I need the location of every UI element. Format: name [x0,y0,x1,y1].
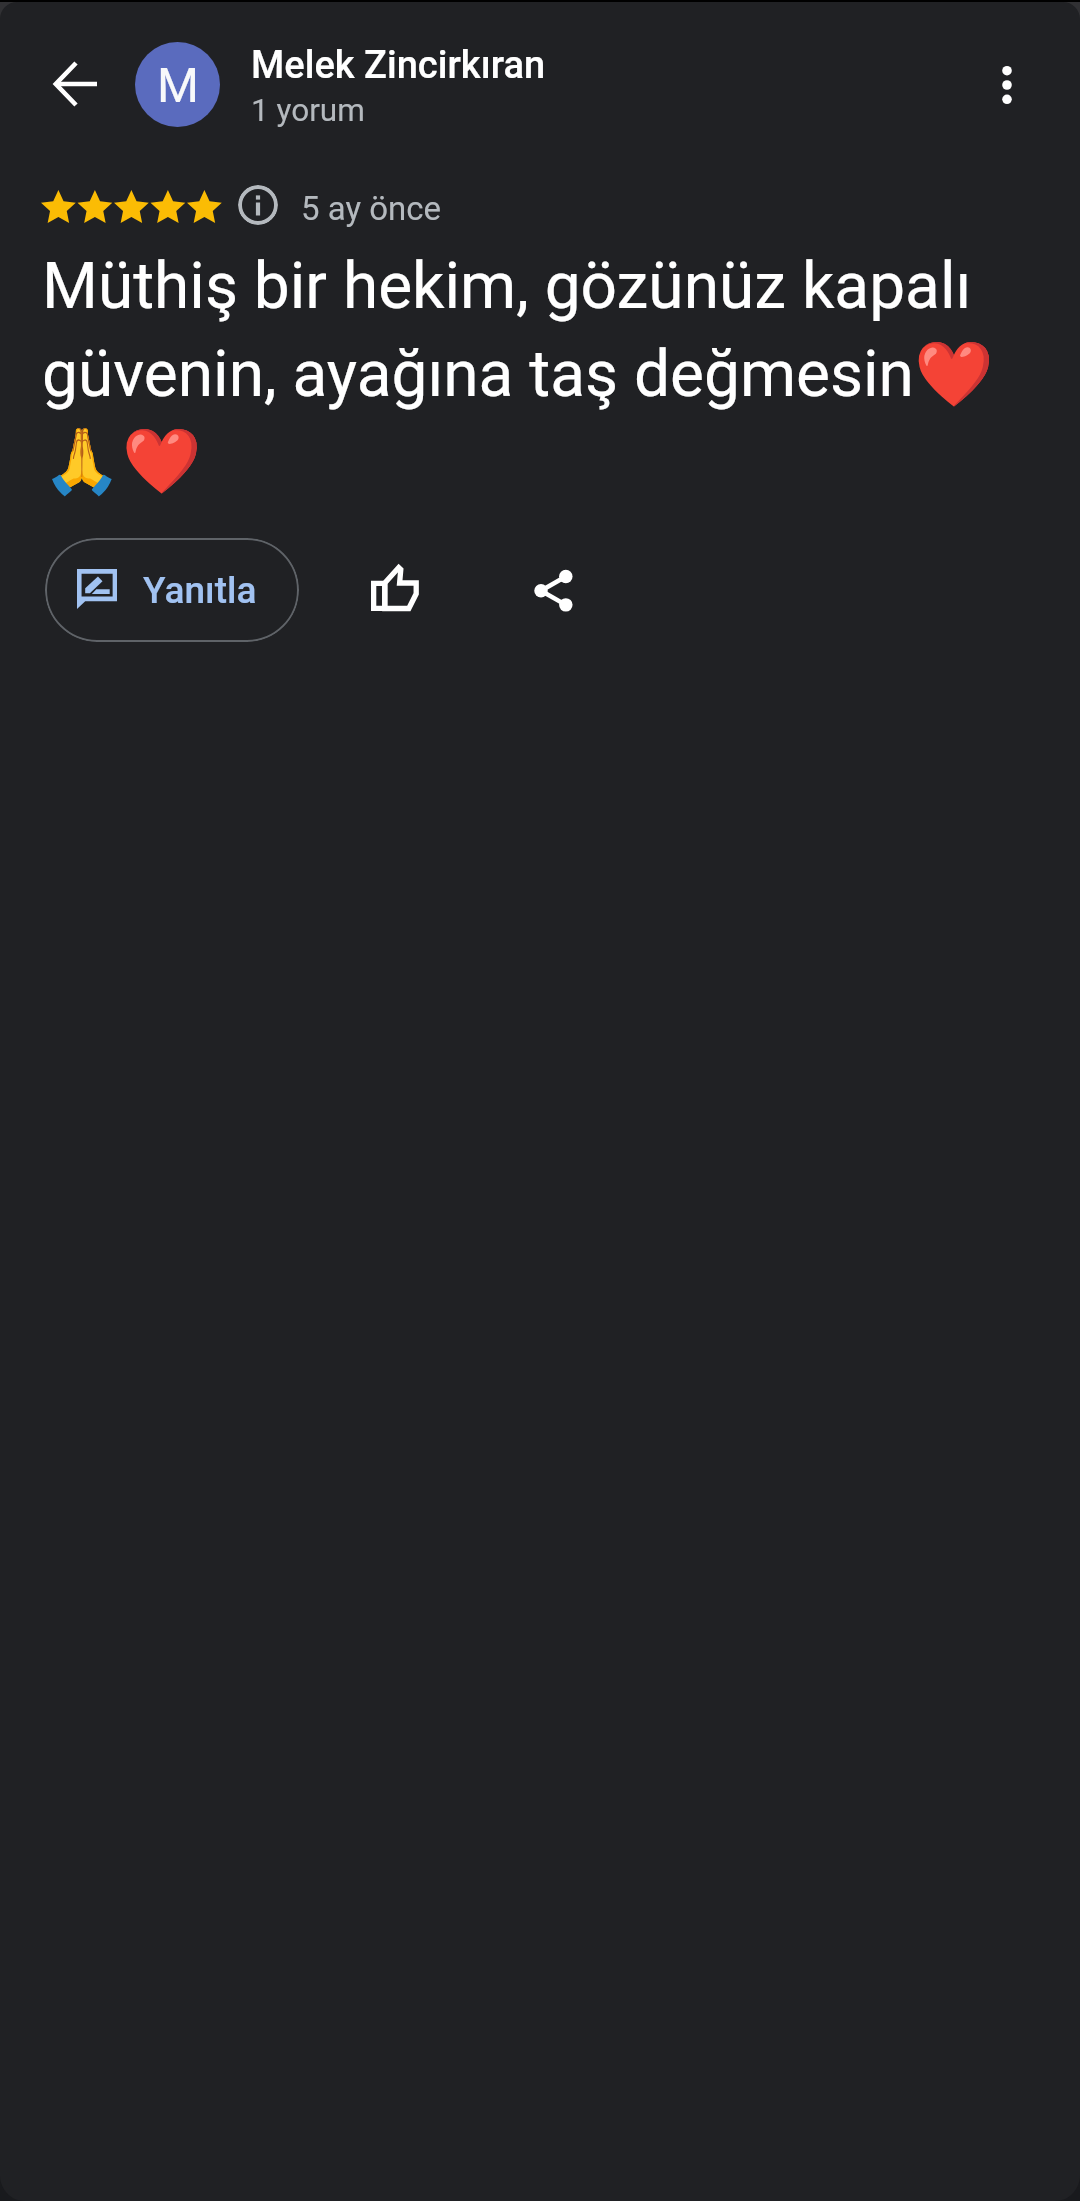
button[interactable]: More options [959,37,1055,133]
staticText: Melek Zincirkıran [251,43,546,88]
button[interactable]: Yanıtla [45,538,299,642]
staticText: Yanıtla [143,569,257,612]
button[interactable]: Back [28,36,124,132]
button[interactable]: Like [348,539,444,635]
staticText: M [157,57,199,113]
staticText: Müthiş bir hekim, gözünüz kapalı güvenin… [42,249,1032,499]
staticText: 5 ay önce [301,189,442,228]
button[interactable]: Rating information [238,185,278,225]
staticText: 1 yorum [251,92,365,129]
button[interactable]: Share [505,544,601,640]
button[interactable]: Profile photo [135,42,220,127]
